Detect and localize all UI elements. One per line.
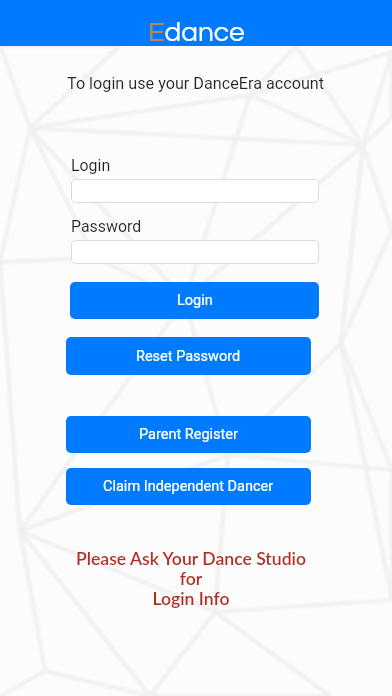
button[interactable]: Reset Password [66, 337, 311, 375]
staticText: Login [71, 156, 111, 175]
staticText: Login [177, 292, 213, 309]
staticText: Please Ask Your Dance Studio for Login I… [71, 548, 311, 609]
staticText: Reset Password [136, 348, 241, 365]
staticText: Parent Register [139, 426, 238, 443]
button[interactable]: Password input [71, 240, 319, 264]
staticText: Password [71, 217, 142, 236]
staticText: Claim Independent Dancer [103, 478, 274, 495]
button[interactable]: Claim Independent Dancer [66, 468, 311, 505]
button[interactable]: Login input [71, 179, 319, 203]
button[interactable]: Login [70, 282, 319, 319]
staticText: Edance [148, 18, 245, 47]
staticText: To login use your DanceEra account [67, 74, 325, 93]
button[interactable]: Parent Register [66, 416, 311, 453]
